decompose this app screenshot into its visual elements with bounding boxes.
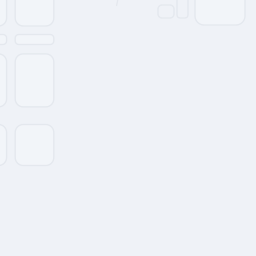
button[interactable]: Search bbox=[0, 34, 7, 44]
button[interactable]: Filter bbox=[158, 5, 174, 18]
button[interactable]: Card two bbox=[15, 124, 54, 165]
button[interactable]: Card two bbox=[0, 124, 7, 165]
button[interactable]: Header card bbox=[15, 0, 54, 26]
button[interactable]: Card one bbox=[0, 54, 7, 107]
button[interactable]: Sort bbox=[177, 0, 188, 18]
button[interactable]: Header card bbox=[0, 0, 7, 26]
button[interactable]: Card one bbox=[15, 54, 54, 107]
button[interactable]: Search bbox=[15, 34, 54, 44]
